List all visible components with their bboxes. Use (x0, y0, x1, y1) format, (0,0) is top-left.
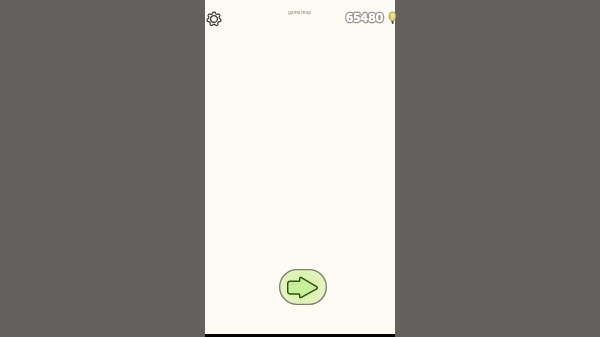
button[interactable]: Next (279, 269, 327, 305)
staticText: 65480 (346, 8, 384, 29)
staticText: game map (288, 8, 311, 16)
button[interactable]: Hint (387, 9, 398, 25)
button[interactable]: Settings (203, 8, 225, 30)
staticText: 65480 (346, 8, 384, 29)
